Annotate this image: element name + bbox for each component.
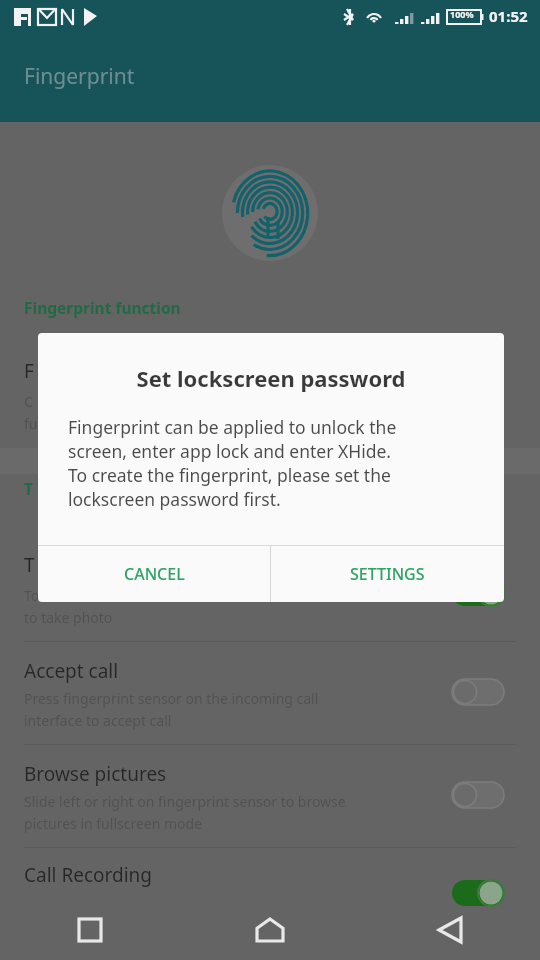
staticText: Press fingerprint sensor on the incoming…	[24, 689, 319, 708]
staticText: Slide left or right on fingerprint senso…	[24, 792, 346, 811]
staticText: to take photo	[24, 608, 113, 627]
staticText: To	[24, 586, 40, 605]
button[interactable]: Browse pictures	[0, 758, 540, 846]
staticText: Fingerprint	[24, 62, 135, 91]
staticText: Call Recording	[24, 862, 153, 888]
staticText: pictures in fullscreen mode	[24, 814, 203, 833]
staticText: T	[24, 552, 35, 578]
staticText: Browse pictures	[24, 761, 167, 787]
button[interactable]: Back	[360, 900, 540, 960]
staticText: SETTINGS	[350, 563, 425, 585]
button[interactable]: Recent apps	[0, 900, 180, 960]
staticText: F	[24, 358, 34, 384]
staticText: fu	[24, 414, 38, 433]
staticText: CANCEL	[124, 563, 185, 585]
button[interactable]: Accept call	[0, 655, 540, 743]
button[interactable]: Home	[180, 900, 360, 960]
staticText: Accept call	[24, 658, 119, 684]
staticText: lockscreen password first.	[68, 487, 281, 511]
staticText: T	[24, 478, 33, 499]
staticText: 01:52	[489, 6, 528, 26]
staticText: Set lockscreen password	[38, 363, 504, 393]
staticText: To create the fingerprint, please set th…	[68, 463, 391, 487]
staticText: Fingerprint can be applied to unlock the	[68, 415, 397, 439]
staticText: interface to accept call	[24, 711, 172, 730]
button[interactable]: SETTINGS	[271, 546, 504, 602]
staticText: screen, enter app lock and enter XHide.	[68, 439, 392, 463]
staticText: C	[24, 392, 33, 411]
staticText: Fingerprint function	[24, 297, 181, 318]
staticText: 100%	[450, 8, 474, 20]
button[interactable]: CANCEL	[38, 546, 270, 602]
